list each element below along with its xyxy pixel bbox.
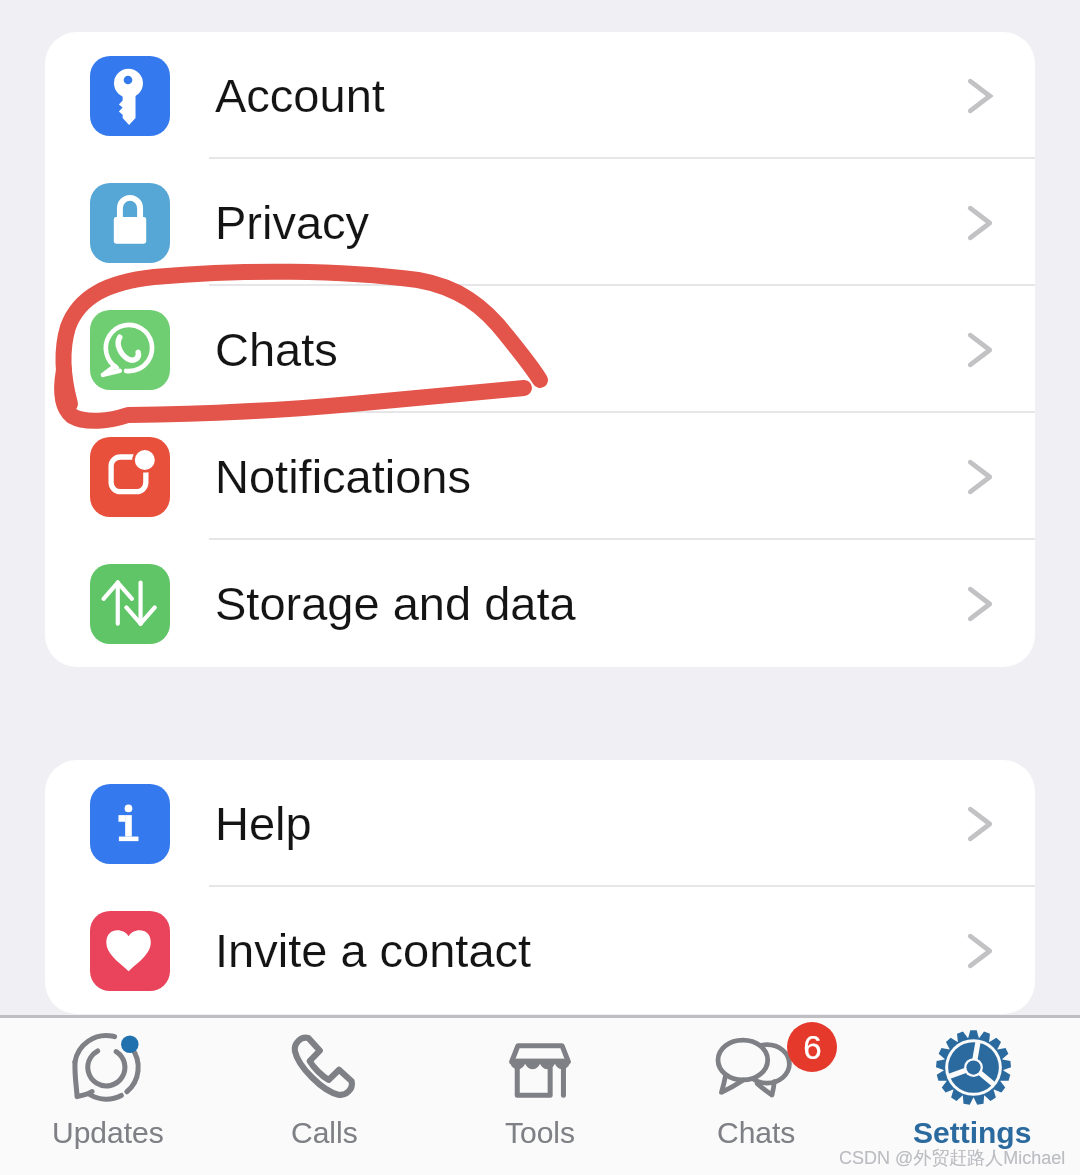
staticText: CSDN @外贸赶路人Michael bbox=[839, 1147, 1066, 1170]
button[interactable]: Help bbox=[45, 760, 1035, 887]
staticText: Tools bbox=[505, 1116, 576, 1150]
staticText: Help bbox=[215, 797, 312, 850]
button[interactable]: Invite a contact bbox=[45, 887, 1035, 1014]
button[interactable]: Calls bbox=[216, 1018, 432, 1175]
button[interactable]: Tools bbox=[432, 1018, 648, 1175]
button[interactable]: Storage and data bbox=[45, 540, 1035, 667]
staticText: Invite a contact bbox=[215, 924, 532, 977]
button[interactable]: Notifications bbox=[45, 413, 1035, 540]
staticText: Storage and data bbox=[215, 577, 576, 630]
staticText: Settings bbox=[913, 1116, 1032, 1150]
staticText: Updates bbox=[52, 1116, 164, 1150]
staticText: Notifications bbox=[215, 450, 471, 503]
staticText: 6 bbox=[803, 1029, 822, 1066]
staticText: Privacy bbox=[215, 196, 370, 249]
button[interactable]: Chats bbox=[45, 286, 1035, 413]
staticText: Account bbox=[215, 69, 385, 122]
button[interactable]: Chats bbox=[648, 1018, 864, 1175]
staticText: Chats bbox=[717, 1116, 796, 1150]
button[interactable]: Privacy bbox=[45, 159, 1035, 286]
button[interactable]: Account bbox=[45, 32, 1035, 159]
button[interactable]: Settings bbox=[864, 1018, 1080, 1175]
staticText: Chats bbox=[215, 323, 338, 376]
staticText: Calls bbox=[291, 1116, 358, 1150]
button[interactable]: Updates bbox=[0, 1018, 216, 1175]
